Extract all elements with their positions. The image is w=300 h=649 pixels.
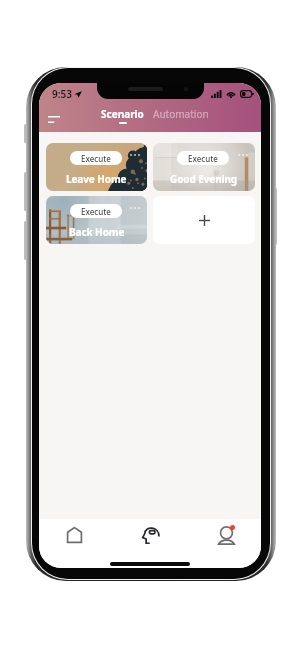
staticText: Execute [81, 206, 111, 217]
button[interactable]: More options [128, 152, 142, 158]
button[interactable]: More options [236, 152, 250, 158]
staticText: Leave Home [66, 172, 127, 186]
button[interactable]: Execute [70, 151, 122, 165]
staticText: Execute [188, 153, 218, 164]
button[interactable]: Home [39, 519, 113, 549]
staticText: Good Evening [170, 172, 238, 186]
staticText: Back Home [69, 225, 125, 239]
button[interactable]: Execute [46, 196, 147, 244]
staticText: 9:53 [52, 87, 72, 101]
button[interactable]: Execute [177, 151, 229, 165]
button[interactable]: Assistant [113, 519, 187, 549]
button[interactable]: Add scenario [153, 196, 255, 244]
button[interactable]: Execute [70, 204, 122, 218]
button[interactable]: More options [128, 205, 142, 211]
button[interactable]: Scenario [98, 107, 147, 124]
button[interactable]: Menu [43, 108, 65, 130]
button[interactable]: Automation [150, 107, 212, 121]
button[interactable]: Execute [46, 143, 147, 191]
staticText: Automation [153, 107, 209, 121]
staticText: Scenario [101, 107, 144, 121]
button[interactable]: Execute [153, 143, 255, 191]
staticText: Execute [81, 153, 111, 164]
button[interactable]: Profile [187, 519, 261, 549]
